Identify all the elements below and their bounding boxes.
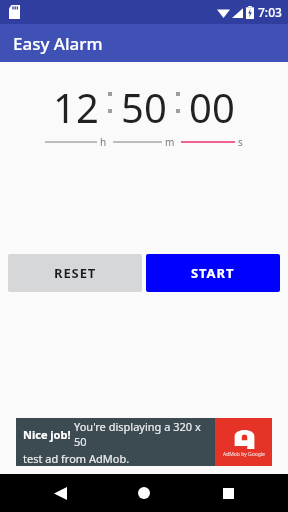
staticText: s — [238, 135, 243, 149]
button[interactable]: 00 — [181, 80, 243, 149]
staticText: You're displaying a 320 x 50 — [74, 419, 215, 449]
staticText: 00 — [189, 80, 235, 134]
staticText: 50 — [121, 80, 167, 134]
staticText: START — [191, 264, 235, 282]
staticText: RESET — [54, 264, 97, 282]
button[interactable]: RESET — [8, 254, 142, 292]
button[interactable]: Nice job! — [16, 418, 272, 466]
button[interactable]: 50 — [113, 80, 175, 149]
staticText: 7:03 — [258, 4, 282, 20]
staticText: AdMob by Google — [223, 451, 265, 458]
staticText: Nice job! — [23, 427, 71, 442]
button[interactable]: Back — [36, 474, 84, 512]
staticText: Easy Alarm — [13, 32, 103, 55]
button[interactable]: 12 — [45, 80, 107, 149]
button[interactable]: Home — [120, 474, 168, 512]
staticText: 12 — [53, 80, 99, 134]
staticText: m — [165, 135, 175, 149]
button[interactable]: START — [146, 254, 280, 292]
staticText: test ad from AdMob. — [23, 451, 130, 466]
staticText: h — [100, 135, 107, 149]
button[interactable]: Recent apps — [204, 474, 252, 512]
